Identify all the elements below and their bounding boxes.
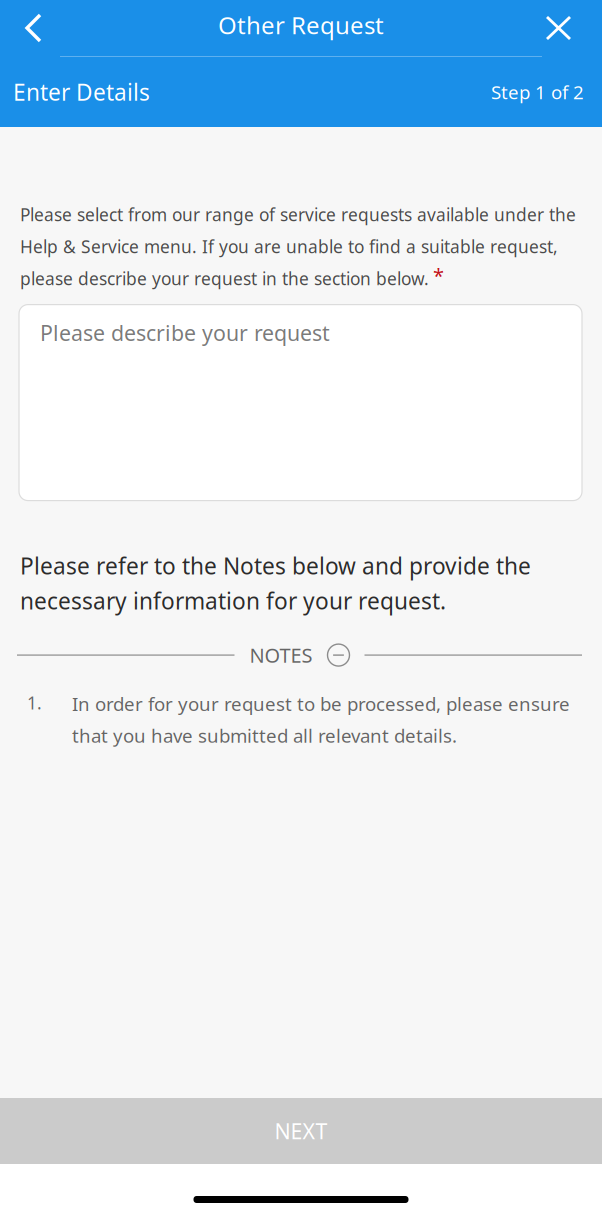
staticText: 1. [27, 691, 42, 714]
staticText: NOTES [249, 642, 312, 668]
staticText: NEXT [274, 1117, 327, 1145]
button[interactable]: NOTES [0, 642, 602, 668]
staticText: Enter Details [13, 77, 150, 107]
staticText: * [433, 262, 444, 289]
staticText: Please select from our range of service … [20, 203, 576, 226]
staticText: please describe your request in the sect… [20, 267, 429, 290]
button[interactable]: Back [0, 1, 61, 55]
staticText: Other Request [218, 9, 384, 41]
button[interactable]: Close [527, 1, 602, 55]
staticText: Step 1 of 2 [491, 80, 584, 104]
button[interactable]: Please describe your request [0, 305, 602, 501]
staticText: Please describe your request [40, 319, 330, 347]
staticText: Help & Service menu. If you are unable t… [20, 235, 558, 258]
staticText: In order for your request to be processe… [72, 691, 570, 748]
button[interactable]: NEXT [0, 1098, 602, 1164]
staticText: Please refer to the Notes below and prov… [20, 551, 531, 616]
